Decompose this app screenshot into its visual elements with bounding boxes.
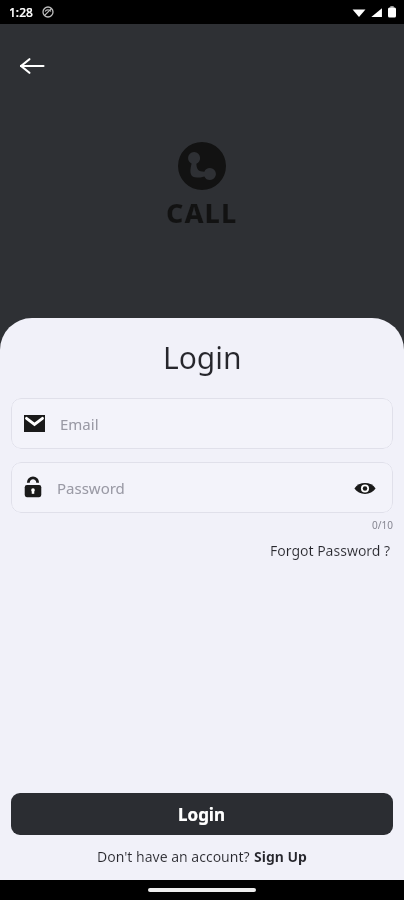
staticText: Login [178, 803, 226, 826]
button[interactable]: Back [8, 42, 56, 90]
button[interactable]: Email [11, 398, 393, 449]
staticText: 0/10 [372, 518, 393, 532]
staticText: Login [163, 337, 242, 378]
staticText: Forgot Password ? [270, 541, 391, 560]
button[interactable]: Login [11, 793, 393, 835]
staticText: Password [57, 478, 125, 498]
button[interactable]: Don't have an account? [11, 847, 393, 866]
staticText: Don't have an account? [97, 847, 254, 866]
staticText: 1:28 [9, 4, 33, 20]
staticText: CALL [166, 194, 238, 231]
button[interactable]: Show password [350, 473, 380, 503]
staticText: Sign Up [254, 847, 307, 866]
button[interactable]: Password [11, 462, 393, 513]
button[interactable]: Forgot Password ? [268, 539, 393, 562]
staticText: Email [60, 414, 99, 434]
